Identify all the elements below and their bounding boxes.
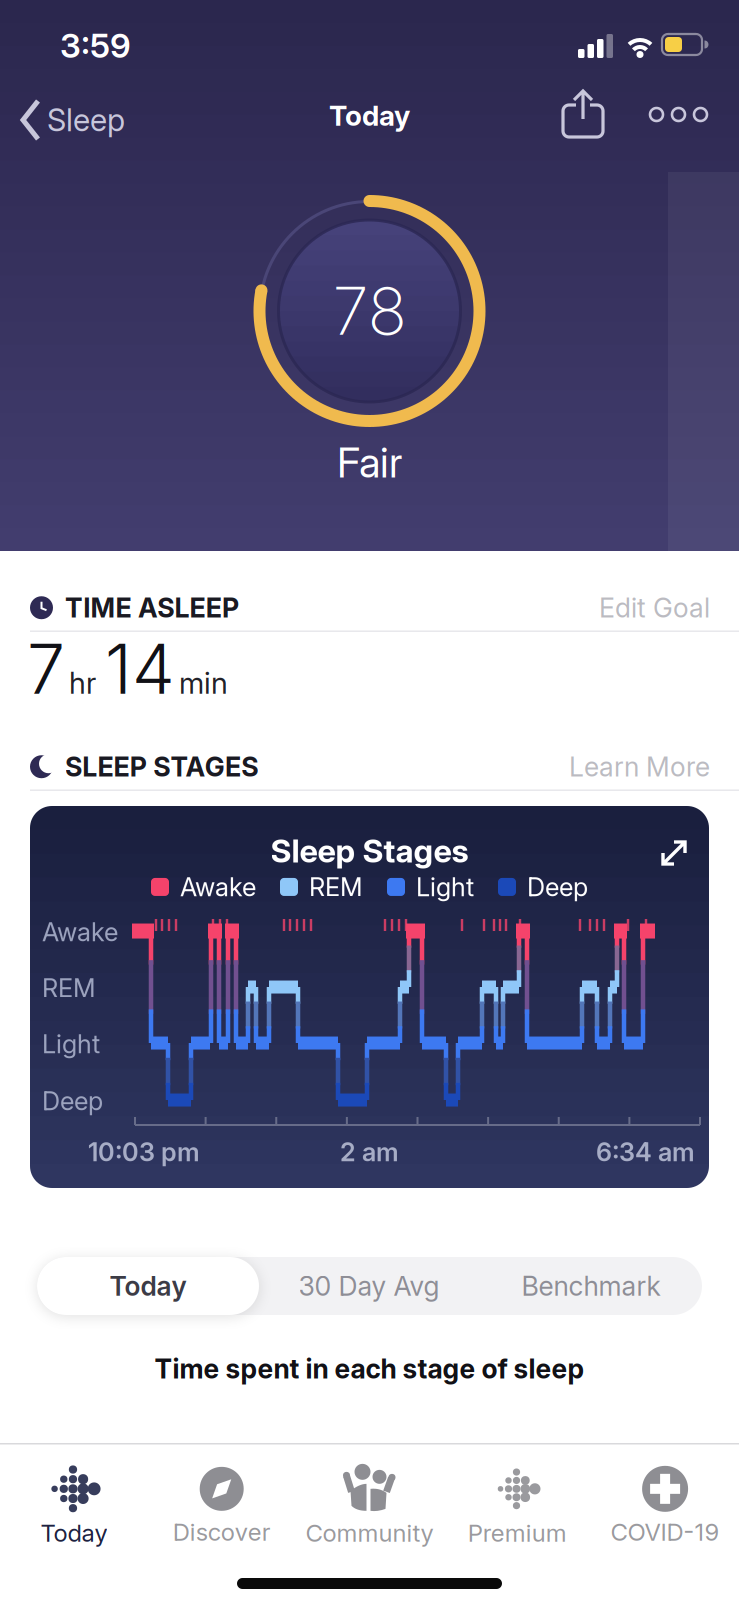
- button[interactable]: Today: [0, 1456, 148, 1554]
- staticText: Light: [416, 872, 474, 902]
- button[interactable]: More options: [650, 108, 707, 121]
- button[interactable]: Share: [563, 89, 605, 139]
- staticText: 2 am: [340, 1137, 399, 1167]
- staticText: 30 Day Avg: [298, 1270, 439, 1302]
- button[interactable]: Community: [296, 1456, 443, 1554]
- staticText: Today: [109, 1270, 186, 1302]
- staticText: Sleep Stages: [270, 832, 468, 870]
- button[interactable]: Back to Sleep: [20, 98, 125, 142]
- staticText: 78: [332, 272, 406, 350]
- staticText: Light: [42, 1029, 100, 1059]
- staticText: Time spent in each stage of sleep: [154, 1353, 584, 1384]
- staticText: Premium: [468, 1519, 567, 1547]
- staticText: Edit Goal: [599, 592, 710, 623]
- staticText: COVID-19: [611, 1518, 720, 1546]
- staticText: Fair: [337, 438, 402, 487]
- staticText: 7: [27, 629, 65, 709]
- staticText: Community: [305, 1519, 433, 1547]
- staticText: Benchmark: [521, 1270, 660, 1302]
- button[interactable]: Edit Goal: [599, 592, 710, 623]
- button[interactable]: 30 Day Avg: [258, 1257, 480, 1315]
- staticText: SLEEP STAGES: [65, 751, 258, 782]
- button[interactable]: Discover: [148, 1456, 296, 1554]
- button[interactable]: Premium: [443, 1456, 591, 1554]
- staticText: Learn More: [569, 751, 710, 782]
- staticText: Deep: [527, 872, 588, 902]
- staticText: Discover: [173, 1518, 271, 1546]
- staticText: Awake: [42, 917, 118, 947]
- staticText: Deep: [42, 1086, 103, 1116]
- button[interactable]: Benchmark: [480, 1257, 702, 1315]
- staticText: hr: [69, 666, 96, 700]
- staticText: Today: [40, 1519, 107, 1547]
- staticText: 6:34 am: [596, 1137, 695, 1167]
- button[interactable]: COVID-19: [591, 1456, 739, 1554]
- staticText: Sleep: [47, 102, 125, 138]
- staticText: 3:59: [60, 26, 131, 65]
- button[interactable]: Today: [37, 1257, 259, 1315]
- staticText: 14: [105, 629, 175, 709]
- staticText: Today: [329, 99, 410, 132]
- staticText: min: [179, 666, 228, 700]
- staticText: REM: [309, 872, 363, 902]
- staticText: TIME ASLEEP: [65, 592, 239, 623]
- staticText: 10:03 pm: [88, 1137, 200, 1167]
- button[interactable]: Learn More: [569, 751, 710, 782]
- staticText: REM: [42, 973, 96, 1003]
- button[interactable]: Expand chart: [660, 839, 688, 867]
- staticText: Awake: [180, 872, 256, 902]
